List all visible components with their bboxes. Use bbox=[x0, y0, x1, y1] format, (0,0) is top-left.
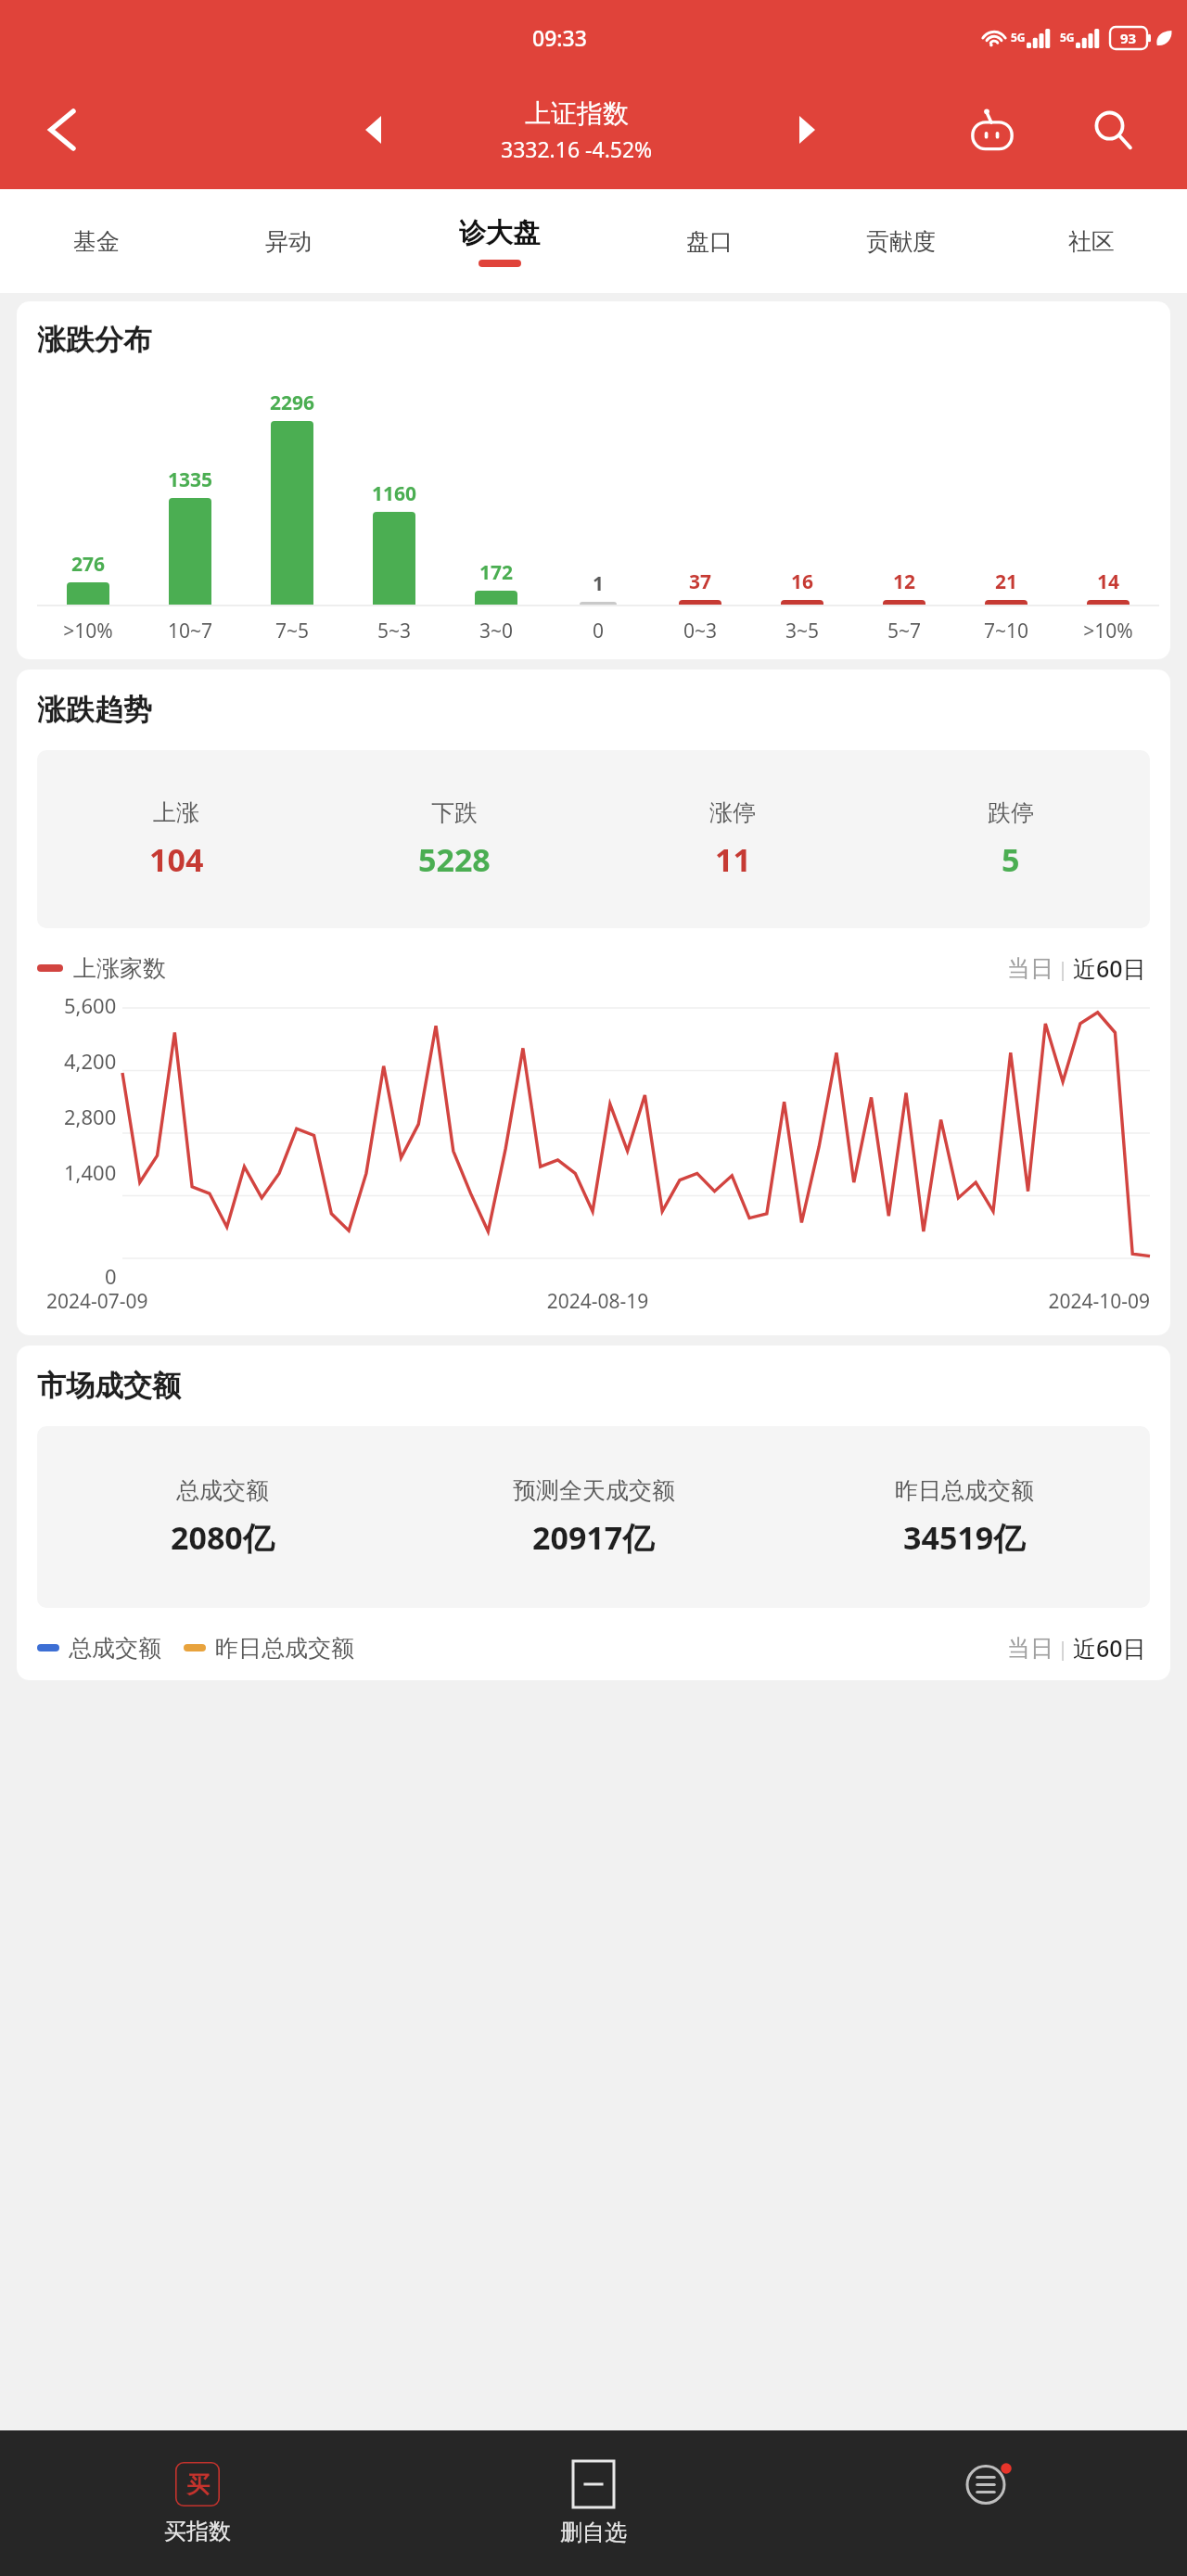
button[interactable]: Search bbox=[1078, 95, 1148, 165]
staticText: >10% bbox=[1057, 618, 1159, 644]
staticText: 3332.16 -4.52% bbox=[501, 134, 653, 163]
staticText: 20917亿 bbox=[532, 1516, 655, 1559]
staticText: 21 bbox=[995, 568, 1018, 595]
staticText: 涨跌分布 bbox=[37, 322, 152, 358]
staticText: 盘口 bbox=[686, 227, 733, 256]
staticText: 1,400 bbox=[64, 1158, 117, 1186]
staticText: 104 bbox=[149, 838, 204, 881]
button[interactable]: 买 bbox=[0, 2430, 395, 2576]
staticText: 11 bbox=[715, 838, 751, 881]
staticText: 5,600 bbox=[64, 991, 117, 1019]
staticText: 2024-08-19 bbox=[414, 1288, 782, 1315]
staticText: 总成交额 bbox=[176, 1476, 269, 1505]
staticText: 5~3 bbox=[343, 618, 445, 644]
button[interactable]: Next bbox=[777, 100, 836, 159]
staticText: 涨跌趋势 bbox=[37, 692, 152, 728]
staticText: 删自选 bbox=[560, 2519, 627, 2546]
staticText: 172 bbox=[479, 559, 514, 586]
staticText: 社区 bbox=[1068, 227, 1115, 256]
staticText: 市场成交额 bbox=[37, 1368, 181, 1404]
staticText: 37 bbox=[689, 568, 712, 595]
staticText: >10% bbox=[37, 618, 139, 644]
staticText: 09:33 bbox=[532, 23, 587, 52]
staticText: 2,800 bbox=[64, 1103, 117, 1130]
staticText: 34519亿 bbox=[903, 1516, 1026, 1559]
button[interactable]: Back bbox=[30, 97, 95, 162]
button[interactable]: 异动 bbox=[192, 189, 384, 293]
button[interactable]: 近60日 bbox=[1069, 1632, 1150, 1664]
button[interactable]: 贡献度 bbox=[805, 189, 996, 293]
button[interactable]: More bbox=[791, 2430, 1187, 2576]
staticText: 昨日总成交额 bbox=[215, 1634, 354, 1663]
button[interactable]: 盘口 bbox=[614, 189, 805, 293]
staticText: 2080亿 bbox=[171, 1516, 274, 1559]
staticText: 0 bbox=[105, 1262, 117, 1290]
staticText: 上涨 bbox=[153, 798, 199, 827]
button[interactable]: 删自选 bbox=[395, 2430, 791, 2576]
staticText: 总成交额 bbox=[69, 1634, 161, 1663]
staticText: 4,200 bbox=[64, 1047, 117, 1075]
staticText: 2024-07-09 bbox=[46, 1288, 414, 1315]
staticText: 上证指数 bbox=[525, 97, 629, 130]
staticText: 当日 bbox=[1007, 1634, 1053, 1663]
staticText: 16 bbox=[791, 568, 814, 595]
staticText: 93 bbox=[1120, 29, 1137, 47]
staticText: 1160 bbox=[372, 480, 417, 507]
staticText: | bbox=[1057, 1634, 1069, 1662]
staticText: 买 bbox=[186, 2470, 210, 2499]
staticText: 0 bbox=[547, 618, 649, 644]
button[interactable]: 近60日 bbox=[1069, 952, 1150, 984]
staticText: 异动 bbox=[265, 227, 312, 256]
staticText: 近60日 bbox=[1073, 952, 1146, 984]
staticText: 5G bbox=[1060, 30, 1075, 45]
staticText: 预测全天成交额 bbox=[513, 1476, 675, 1505]
staticText: 3~0 bbox=[445, 618, 547, 644]
staticText: 5~7 bbox=[853, 618, 955, 644]
staticText: 0~3 bbox=[649, 618, 751, 644]
staticText: 1 bbox=[593, 570, 605, 597]
staticText: 昨日总成交额 bbox=[895, 1476, 1034, 1505]
button[interactable]: 当日 bbox=[1003, 954, 1057, 983]
button[interactable]: 社区 bbox=[996, 189, 1187, 293]
staticText: 276 bbox=[71, 551, 106, 578]
staticText: 7~5 bbox=[241, 618, 343, 644]
button[interactable]: 诊大盘 bbox=[384, 189, 614, 293]
staticText: 涨停 bbox=[709, 798, 756, 827]
staticText: 买指数 bbox=[164, 2518, 231, 2545]
staticText: 跌停 bbox=[988, 798, 1034, 827]
button[interactable]: Previous bbox=[343, 100, 402, 159]
staticText: 下跌 bbox=[431, 798, 478, 827]
staticText: 7~10 bbox=[955, 618, 1057, 644]
staticText: 当日 bbox=[1007, 954, 1053, 983]
staticText: 12 bbox=[893, 568, 916, 595]
button[interactable]: 基金 bbox=[0, 189, 192, 293]
staticText: 5 bbox=[1002, 838, 1020, 881]
staticText: 基金 bbox=[73, 227, 120, 256]
staticText: 上涨家数 bbox=[73, 954, 166, 983]
staticText: 14 bbox=[1097, 568, 1120, 595]
staticText: 近60日 bbox=[1073, 1632, 1146, 1664]
button[interactable]: AI assistant bbox=[957, 95, 1027, 165]
staticText: 1335 bbox=[168, 466, 213, 493]
staticText: 2024-10-09 bbox=[782, 1288, 1150, 1315]
staticText: 3~5 bbox=[751, 618, 853, 644]
staticText: 2296 bbox=[270, 389, 315, 416]
staticText: 5G bbox=[1011, 30, 1026, 45]
staticText: 诊大盘 bbox=[459, 216, 540, 250]
staticText: 贡献度 bbox=[866, 227, 936, 256]
button[interactable]: 当日 bbox=[1003, 1634, 1057, 1663]
staticText: | bbox=[1057, 954, 1069, 982]
staticText: 5228 bbox=[418, 838, 491, 881]
staticText: 10~7 bbox=[139, 618, 241, 644]
